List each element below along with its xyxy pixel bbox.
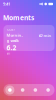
button[interactable]: Profile (42, 84, 55, 96)
staticText: Morning walk (6, 32, 22, 43)
staticText: TODAY (6, 28, 15, 31)
button[interactable]: Activity (16, 84, 29, 96)
staticText: 6.2 (6, 43, 16, 52)
staticText: 42 min (38, 33, 51, 38)
button[interactable]: TODAY (3, 25, 54, 51)
staticText: Moments (3, 13, 34, 22)
staticText: km (6, 52, 9, 55)
button[interactable]: Home (3, 84, 16, 96)
button[interactable]: Discover (29, 84, 42, 96)
staticText: 9:41 (3, 1, 10, 7)
